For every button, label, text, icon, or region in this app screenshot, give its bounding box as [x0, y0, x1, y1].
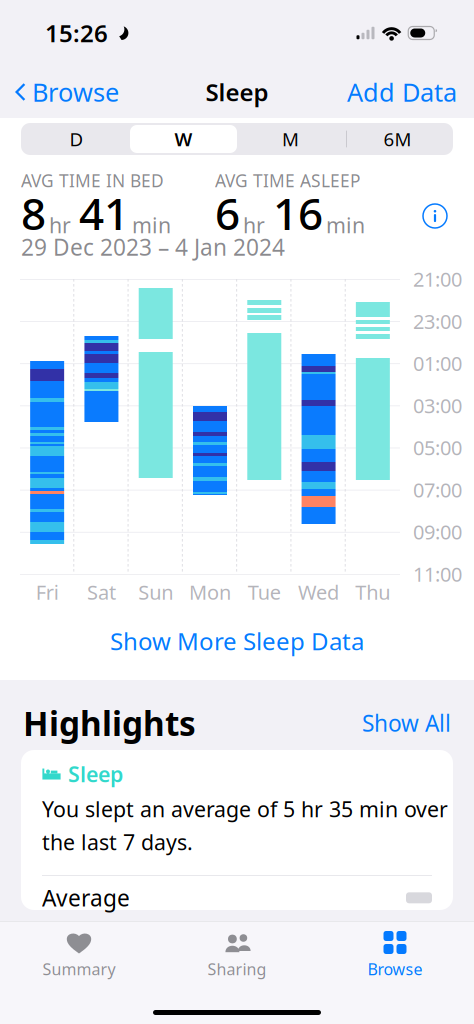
staticText: Show All — [362, 708, 451, 738]
staticText: hr — [243, 211, 265, 239]
staticText: Sun — [138, 579, 173, 605]
button[interactable]: About sleep data — [420, 201, 450, 231]
staticText: Browse — [32, 75, 119, 109]
staticText: Mon — [189, 579, 231, 605]
staticText: 29 Dec 2023 – 4 Jan 2024 — [21, 232, 285, 262]
staticText: W — [174, 127, 192, 151]
staticText: 21:00 — [413, 266, 462, 292]
button[interactable]: D — [23, 125, 130, 153]
staticText: Average — [42, 883, 130, 913]
staticText: Add Data — [347, 75, 457, 109]
staticText: Tue — [248, 579, 281, 605]
staticText: D — [69, 127, 83, 151]
staticText: hr — [49, 211, 71, 239]
staticText: AVG TIME IN BED — [21, 169, 164, 192]
staticText: 6 — [215, 184, 240, 242]
staticText: 03:00 — [413, 392, 462, 419]
button[interactable]: Add Data — [330, 70, 474, 114]
staticText: 09:00 — [413, 519, 462, 545]
staticText: Sleep — [68, 760, 123, 788]
staticText: min — [326, 211, 365, 239]
button[interactable]: Browse — [316, 921, 474, 980]
staticText: You slept an average of 5 hr 35 min over — [42, 795, 448, 823]
staticText: Sleep — [205, 76, 268, 108]
staticText: min — [132, 211, 171, 239]
staticText: 41 — [79, 184, 129, 242]
staticText: AVG TIME ASLEEP — [215, 169, 360, 192]
staticText: 6M — [383, 127, 411, 151]
button[interactable]: 6M — [344, 125, 451, 153]
staticText: 01:00 — [413, 350, 462, 377]
staticText: 11:00 — [413, 561, 462, 587]
staticText: 23:00 — [413, 308, 462, 334]
staticText: Fri — [36, 579, 59, 605]
staticText: 07:00 — [413, 476, 462, 503]
button[interactable]: Summary — [0, 921, 158, 980]
staticText: Summary — [42, 958, 115, 980]
staticText: the last 7 days. — [42, 828, 193, 856]
staticText: Sat — [87, 579, 116, 605]
staticText: 15:26 — [45, 17, 108, 49]
staticText: Highlights — [23, 701, 196, 745]
button[interactable]: Show All — [362, 708, 451, 738]
staticText: 05:00 — [413, 434, 462, 461]
staticText: Browse — [367, 958, 422, 980]
button[interactable]: W — [130, 125, 237, 153]
staticText: M — [282, 127, 299, 151]
staticText: 8 — [21, 184, 46, 242]
staticText: Wed — [298, 579, 339, 605]
button[interactable]: Show More Sleep Data — [0, 601, 474, 677]
staticText: 16 — [273, 184, 323, 242]
button[interactable]: Sharing — [158, 921, 316, 980]
button[interactable]: M — [237, 125, 344, 153]
staticText: Sharing — [207, 958, 266, 980]
staticText: Thu — [355, 579, 390, 605]
staticText: Show More Sleep Data — [110, 625, 364, 657]
button[interactable]: Browse — [0, 70, 133, 114]
